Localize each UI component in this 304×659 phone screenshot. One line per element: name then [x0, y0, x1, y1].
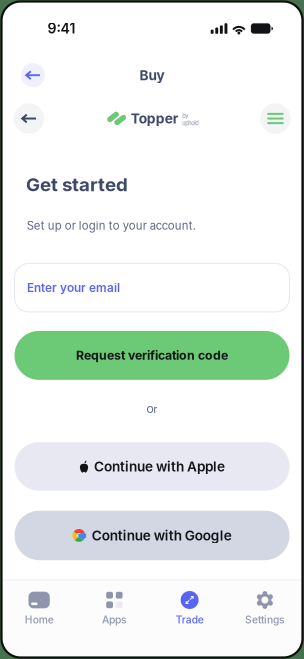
button[interactable]: Apps [77, 591, 152, 636]
staticText: Home [25, 613, 54, 626]
staticText: Or [146, 404, 157, 415]
staticText: Get started [26, 173, 128, 196]
button[interactable]: Continue with Apple [14, 442, 289, 491]
staticText: Set up or login to your account. [27, 219, 196, 232]
button[interactable]: Home [1, 591, 77, 636]
staticText: Request verification code [76, 348, 228, 363]
staticText: by [182, 112, 188, 119]
staticText: Trade [176, 613, 204, 626]
staticText: Continue with Google [92, 527, 232, 544]
button[interactable]: Request verification code [14, 331, 289, 380]
button[interactable]: Settings [227, 591, 302, 636]
staticText: uphold [182, 120, 198, 127]
button[interactable]: Continue with Google [14, 511, 289, 560]
staticText: Topper [131, 110, 179, 127]
staticText: Enter your email [27, 281, 120, 295]
button[interactable]: Trade [152, 591, 227, 636]
staticText: 9:41 [47, 20, 75, 37]
staticText: Apps [102, 613, 127, 626]
button[interactable]: Back [17, 60, 48, 91]
button[interactable]: Menu [257, 100, 293, 136]
staticText: Buy [139, 67, 164, 83]
button[interactable]: Back [11, 100, 47, 136]
staticText: Continue with Apple [94, 458, 225, 475]
staticText: Settings [245, 613, 285, 626]
